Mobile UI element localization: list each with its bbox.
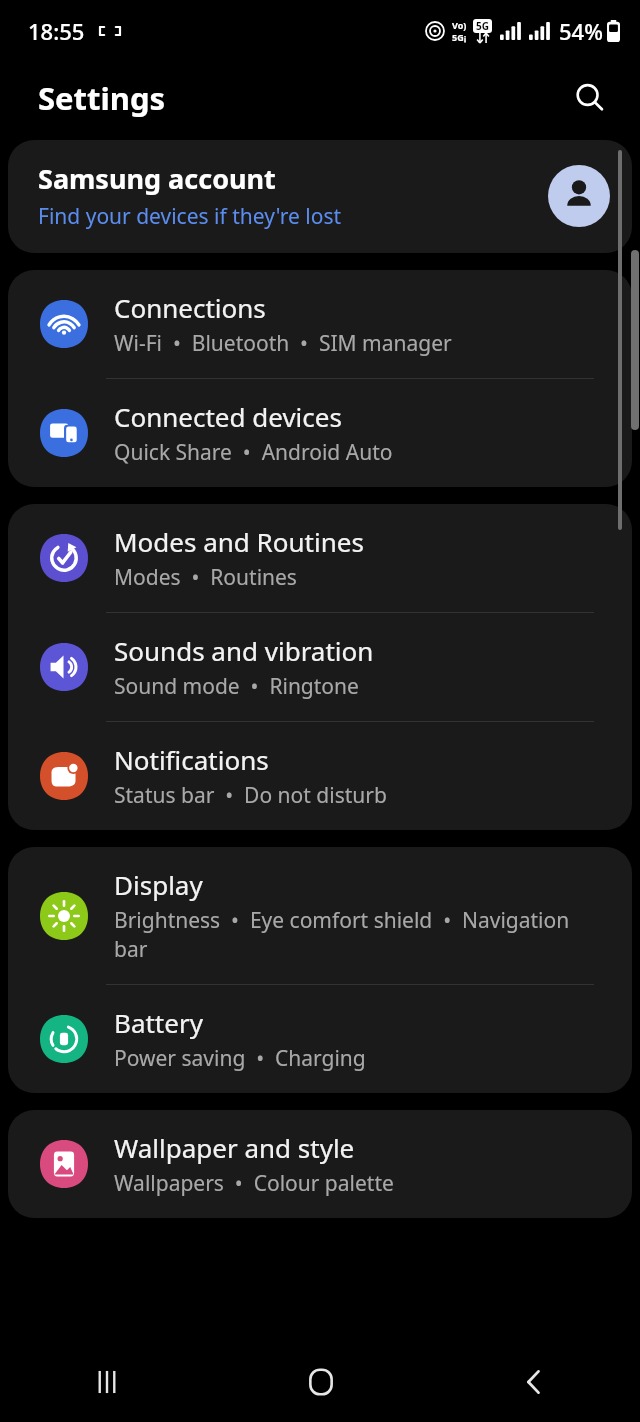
staticText: Display (114, 867, 203, 902)
staticText: Sound mode • Ringtone (114, 672, 359, 701)
staticText: Settings (38, 77, 166, 119)
button[interactable]: Wallpaper and style (8, 1110, 632, 1218)
staticText: 5G (476, 19, 489, 33)
staticText: Modes and Routines (114, 524, 364, 559)
other: Notifications (40, 752, 88, 800)
staticText: Find your devices if they're lost (38, 202, 342, 231)
button[interactable]: Battery (8, 985, 632, 1093)
button[interactable]: Recent apps (0, 1342, 214, 1422)
staticText: 5G¡ (452, 31, 467, 43)
staticText: Samsung account (38, 160, 276, 197)
staticText: Wallpaper and style (114, 1130, 355, 1165)
staticText: Power saving • Charging (114, 1044, 366, 1073)
staticText: Sounds and vibration (114, 633, 374, 668)
staticText: 54% (559, 16, 603, 46)
staticText: Wallpapers • Colour palette (114, 1169, 394, 1198)
staticText: Battery (114, 1005, 203, 1040)
other: Account profile (548, 165, 610, 227)
other: Battery (40, 1015, 88, 1063)
button[interactable]: Search (566, 74, 614, 122)
staticText: Notifications (114, 742, 269, 777)
other: Display (40, 892, 88, 940)
staticText: Status bar • Do not disturb (114, 781, 387, 810)
staticText: 18:55 (28, 16, 85, 46)
other: Connections (40, 300, 88, 348)
other: Connected devices (40, 409, 88, 457)
staticText: Brightness • Eye comfort shield • Naviga… (114, 906, 608, 964)
button[interactable]: Connections (8, 270, 632, 378)
staticText: Vo) (452, 19, 467, 31)
button[interactable]: Display (8, 847, 632, 984)
staticText: Modes • Routines (114, 563, 297, 592)
staticText: Connections (114, 290, 266, 325)
button[interactable]: Back (427, 1342, 640, 1422)
button[interactable]: Samsung account (8, 140, 632, 253)
staticText: Quick Share • Android Auto (114, 438, 393, 467)
button[interactable]: Connected devices (8, 379, 632, 487)
button[interactable]: Sounds and vibration (8, 613, 632, 721)
staticText: Wi-Fi • Bluetooth • SIM manager (114, 329, 452, 358)
other: Modes and Routines (40, 534, 88, 582)
button[interactable]: Notifications (8, 722, 632, 830)
other: Sounds and vibration (40, 643, 88, 691)
button[interactable]: Modes and Routines (8, 504, 632, 612)
button[interactable]: Home (214, 1342, 427, 1422)
staticText: Connected devices (114, 399, 342, 434)
other: Wallpaper and style (40, 1140, 88, 1188)
